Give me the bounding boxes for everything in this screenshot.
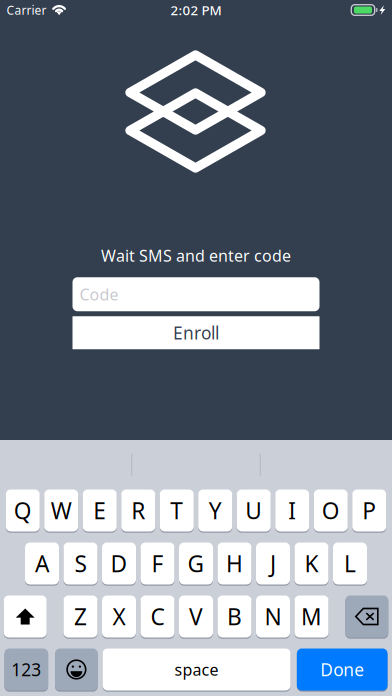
- button[interactable]: U: [237, 489, 271, 533]
- staticText: Enroll: [173, 321, 219, 344]
- staticText: X: [112, 601, 125, 631]
- staticText: Carrier: [6, 2, 46, 18]
- button[interactable]: T: [160, 489, 194, 533]
- button[interactable]: D: [102, 542, 136, 586]
- staticText: Code: [79, 284, 118, 305]
- button[interactable]: Emoji: [55, 648, 98, 692]
- button[interactable]: P: [352, 489, 386, 533]
- staticText: R: [131, 495, 145, 525]
- staticText: U: [245, 495, 262, 525]
- button[interactable]: space: [103, 648, 291, 692]
- button[interactable]: N: [256, 595, 290, 639]
- staticText: Wait SMS and enter code: [101, 245, 291, 266]
- button[interactable]: K: [294, 542, 328, 586]
- button[interactable]: Q: [6, 489, 40, 533]
- button[interactable]: V: [179, 595, 213, 639]
- staticText: space: [175, 659, 219, 680]
- staticText: L: [344, 548, 356, 578]
- button[interactable]: W: [44, 489, 78, 533]
- button[interactable]: G: [179, 542, 213, 586]
- staticText: E: [93, 495, 106, 525]
- button[interactable]: 123: [4, 648, 48, 692]
- staticText: Done: [320, 658, 364, 681]
- staticText: Z: [74, 601, 87, 631]
- button[interactable]: Shift: [4, 595, 47, 639]
- staticText: S: [74, 548, 86, 578]
- staticText: D: [110, 548, 127, 578]
- button[interactable]: C: [140, 595, 174, 639]
- button[interactable]: Y: [198, 489, 232, 533]
- staticText: A: [35, 548, 49, 578]
- button[interactable]: M: [294, 595, 328, 639]
- staticText: 2:02 PM: [170, 1, 221, 19]
- staticText: Y: [209, 495, 222, 525]
- staticText: F: [151, 548, 163, 578]
- staticText: Q: [14, 495, 32, 525]
- button[interactable]: Delete: [345, 595, 388, 639]
- button[interactable]: I: [275, 489, 309, 533]
- staticText: G: [187, 548, 204, 578]
- button[interactable]: Z: [63, 595, 97, 639]
- button[interactable]: R: [121, 489, 155, 533]
- button[interactable]: B: [217, 595, 251, 639]
- staticText: I: [288, 495, 296, 525]
- button[interactable]: L: [333, 542, 367, 586]
- staticText: H: [226, 548, 243, 578]
- staticText: J: [270, 548, 276, 578]
- staticText: M: [301, 601, 322, 631]
- button[interactable]: F: [140, 542, 174, 586]
- staticText: V: [189, 601, 203, 631]
- button[interactable]: J: [256, 542, 290, 586]
- button[interactable]: Done: [297, 648, 388, 692]
- button[interactable]: H: [217, 542, 251, 586]
- button[interactable]: O: [314, 489, 348, 533]
- button[interactable]: A: [25, 542, 59, 586]
- staticText: W: [51, 495, 72, 525]
- staticText: 123: [11, 658, 41, 681]
- button[interactable]: E: [83, 489, 117, 533]
- staticText: P: [362, 495, 376, 525]
- staticText: C: [150, 601, 164, 631]
- staticText: N: [264, 601, 281, 631]
- staticText: T: [170, 495, 183, 525]
- staticText: B: [227, 601, 242, 631]
- button[interactable]: Enroll: [72, 316, 319, 349]
- staticText: K: [304, 548, 318, 578]
- staticText: O: [322, 495, 340, 525]
- button[interactable]: S: [63, 542, 97, 586]
- button[interactable]: X: [102, 595, 136, 639]
